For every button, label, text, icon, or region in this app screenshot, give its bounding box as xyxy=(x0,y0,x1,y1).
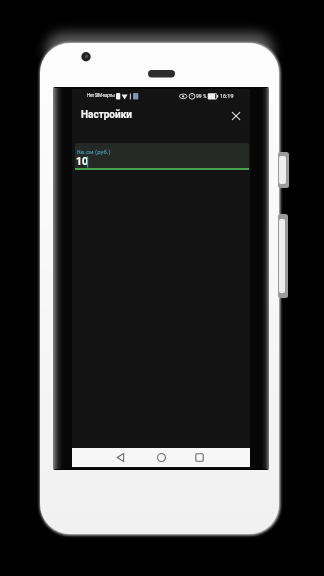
button[interactable] xyxy=(155,451,168,464)
button[interactable] xyxy=(193,451,206,464)
staticText: Настройки xyxy=(81,109,133,121)
button[interactable] xyxy=(228,108,244,124)
staticText: Кв.см (руб.) xyxy=(77,148,111,155)
staticText: 16:19 xyxy=(220,93,234,99)
button[interactable]: Кв.см (руб.) xyxy=(75,143,249,168)
button[interactable] xyxy=(114,451,127,464)
staticText: Нет SIM-карты xyxy=(87,93,115,98)
staticText: 99 % xyxy=(196,93,207,99)
staticText: 10 xyxy=(76,155,89,167)
